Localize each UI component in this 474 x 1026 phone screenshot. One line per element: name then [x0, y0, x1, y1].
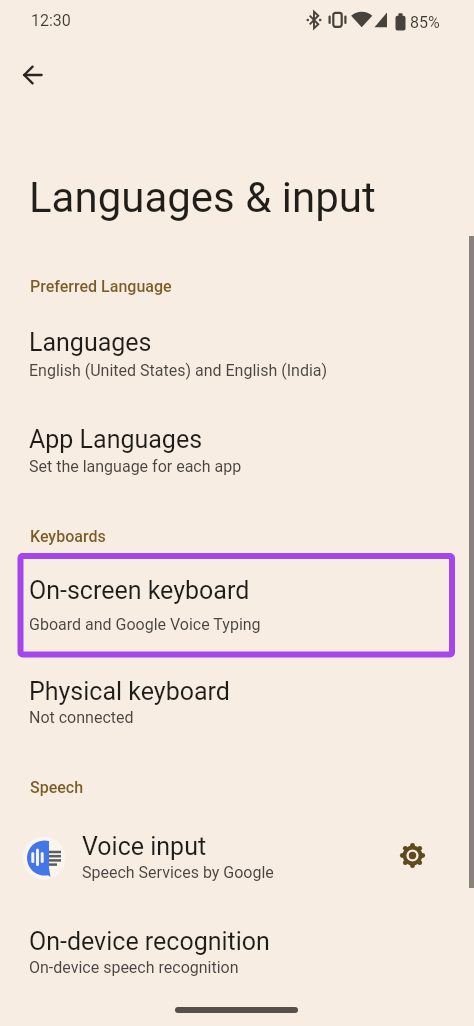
staticText: 85%	[410, 13, 440, 32]
staticText: Physical keyboard	[29, 677, 230, 706]
staticText: Speech Services by Google	[82, 863, 274, 882]
staticText: Languages & input	[29, 173, 376, 222]
staticText: Keyboards	[30, 527, 106, 546]
staticText: Gboard and Google Voice Typing	[29, 615, 261, 634]
staticText: Voice input	[82, 832, 207, 861]
staticText: Set the language for each app	[29, 457, 242, 476]
staticText: On-screen keyboard	[29, 576, 250, 605]
staticText: 12:30	[31, 11, 71, 30]
staticText: Speech	[30, 778, 84, 797]
staticText: Not connected	[29, 708, 134, 727]
staticText: Preferred Language	[30, 277, 172, 296]
staticText: App Languages	[29, 425, 203, 454]
staticText: On-device recognition	[29, 927, 270, 956]
staticText: On-device speech recognition	[29, 958, 239, 977]
staticText: Languages	[29, 328, 152, 357]
staticText: English (United States) and English (Ind…	[29, 361, 328, 380]
